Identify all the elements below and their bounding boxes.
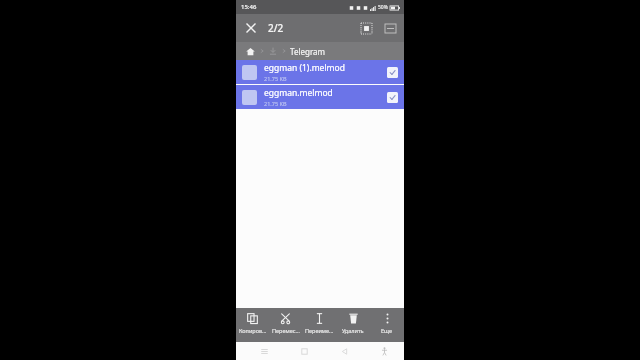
staticText: 21.75 KB bbox=[264, 100, 287, 107]
staticText: Telegram bbox=[290, 46, 326, 57]
staticText: 50% bbox=[378, 4, 388, 11]
button[interactable]: Accessibility bbox=[376, 343, 392, 359]
button[interactable]: Удалить bbox=[336, 308, 370, 342]
button[interactable]: eggman.melmod bbox=[236, 85, 404, 109]
staticText: Переиме… bbox=[305, 327, 334, 334]
button[interactable]: View options bbox=[380, 18, 400, 38]
button[interactable]: Downloads bbox=[267, 45, 279, 57]
staticText: Копиров… bbox=[239, 327, 267, 334]
staticText: eggman.melmod bbox=[264, 87, 333, 99]
button[interactable]: Переиме… bbox=[302, 308, 336, 342]
button[interactable]: Close selection bbox=[242, 19, 260, 37]
button[interactable]: Selected bbox=[387, 67, 398, 78]
button[interactable]: Select all bbox=[356, 18, 376, 38]
button[interactable]: Recents bbox=[256, 343, 272, 359]
button[interactable]: Перемес… bbox=[269, 308, 302, 342]
staticText: 15:46 bbox=[241, 3, 257, 11]
button[interactable]: eggman (1).melmod bbox=[236, 60, 404, 84]
button[interactable]: Telegram bbox=[290, 46, 326, 57]
button[interactable]: Back bbox=[336, 343, 352, 359]
staticText: 2/2 bbox=[268, 21, 284, 35]
button[interactable]: Еще bbox=[370, 308, 404, 342]
staticText: Еще bbox=[381, 327, 393, 334]
button[interactable]: Home bbox=[244, 45, 257, 58]
button[interactable]: Home bbox=[296, 343, 312, 359]
button[interactable]: Копиров… bbox=[236, 308, 269, 342]
staticText: 21.75 KB bbox=[264, 75, 287, 82]
button[interactable]: Selected bbox=[387, 92, 398, 103]
staticText: eggman (1).melmod bbox=[264, 62, 345, 74]
staticText: Перемес… bbox=[272, 327, 300, 334]
staticText: Удалить bbox=[342, 327, 364, 334]
